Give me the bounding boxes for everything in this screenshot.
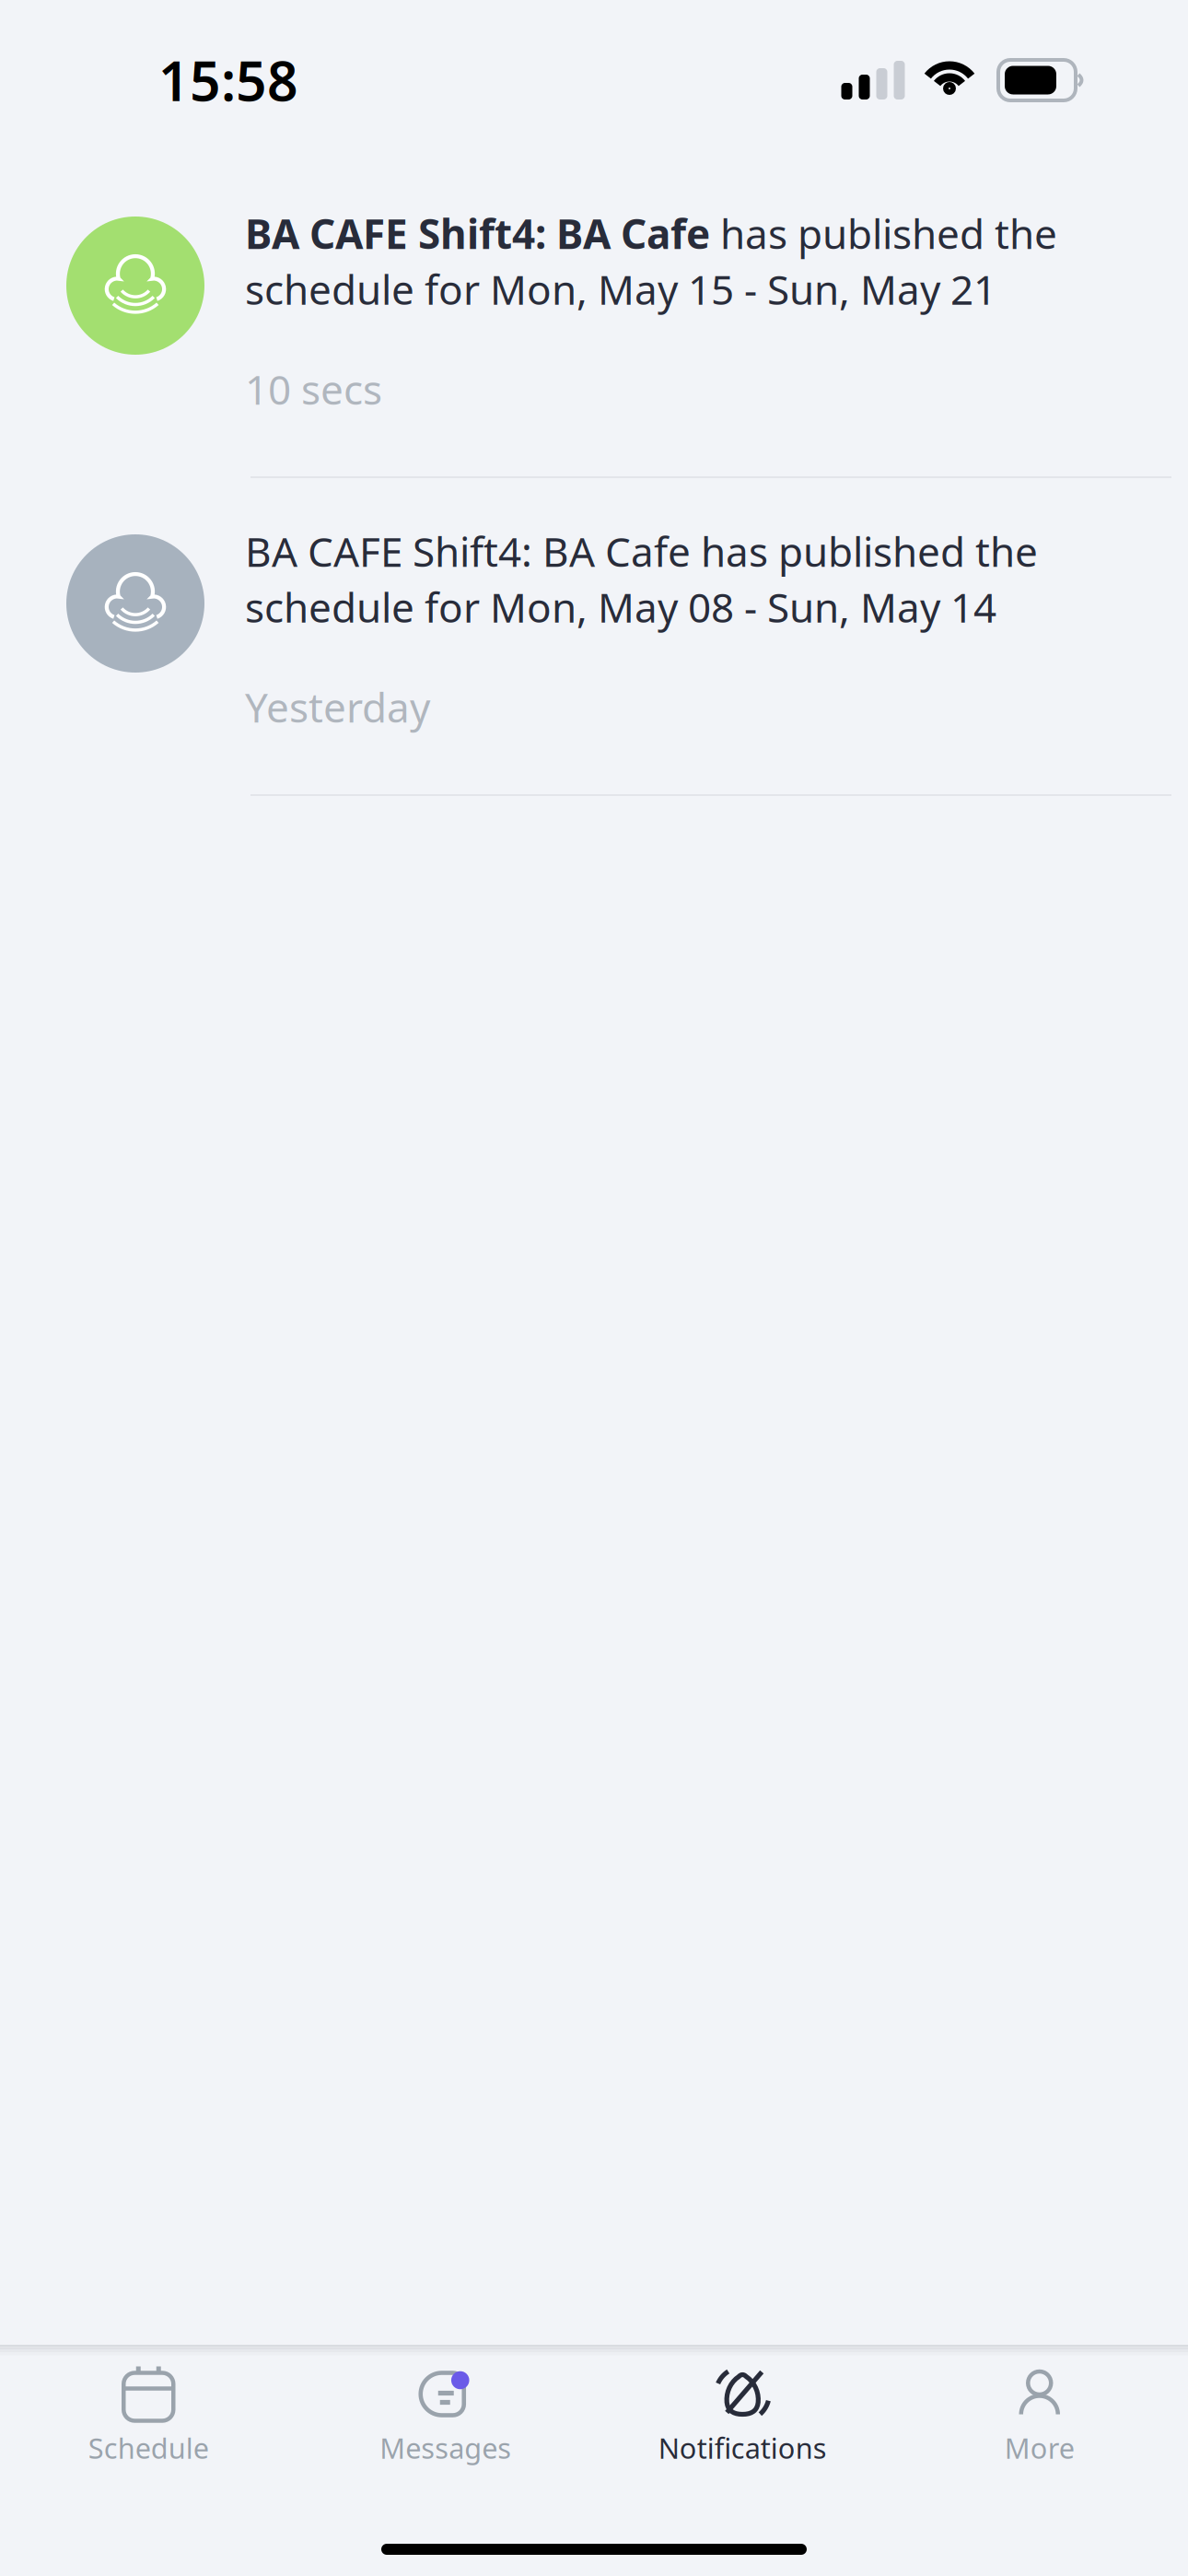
button[interactable]: BA CAFE Shift4: BA Cafe has published th… xyxy=(66,478,1188,794)
button[interactable]: Notifications xyxy=(594,2355,891,2478)
staticText: Messages xyxy=(380,2429,511,2467)
staticText: 15:58 xyxy=(158,44,298,116)
staticText: Yesterday xyxy=(245,680,430,734)
staticText: More xyxy=(1005,2429,1075,2467)
staticText: Schedule xyxy=(88,2429,209,2467)
staticText: BA CAFE Shift4: BA Cafe has published th… xyxy=(245,524,1038,634)
staticText: 10 secs xyxy=(245,362,382,416)
button[interactable]: BA CAFE Shift4: BA Cafe has published th… xyxy=(66,160,1188,476)
button[interactable]: Messages xyxy=(297,2355,594,2478)
staticText: BA CAFE Shift4: BA Cafe has published th… xyxy=(245,206,1057,316)
button[interactable]: Schedule xyxy=(0,2355,297,2478)
staticText: Notifications xyxy=(658,2429,827,2467)
button[interactable]: More xyxy=(891,2355,1188,2478)
